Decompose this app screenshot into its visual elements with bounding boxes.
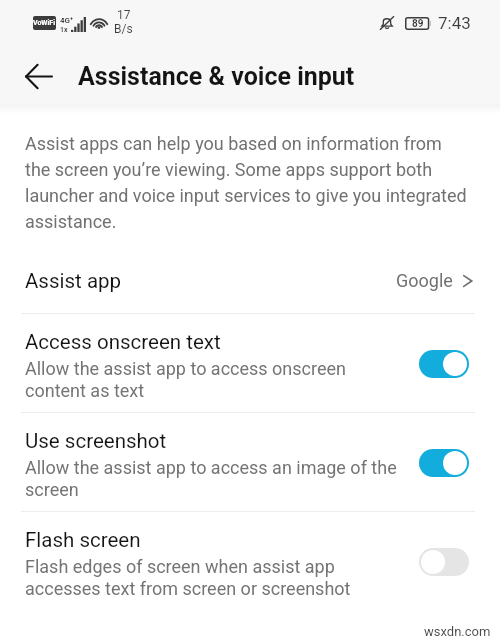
staticText: Assist apps can help you based on inform… — [25, 133, 469, 232]
button[interactable]: Access onscreen text — [0, 314, 500, 412]
staticText: B/s — [114, 22, 133, 36]
button[interactable]: Use screenshot — [0, 413, 500, 511]
staticText: Assist app — [25, 269, 122, 293]
staticText: Access onscreen text — [25, 330, 221, 354]
staticText: 89 — [412, 18, 424, 30]
button[interactable]: Back — [15, 52, 63, 100]
staticText: Use screenshot — [25, 429, 167, 453]
button[interactable]: Switch on — [419, 449, 469, 477]
staticText: 4G⁺ — [60, 16, 74, 25]
staticText: VoWiFi — [33, 19, 56, 27]
staticText: Flash screen — [25, 528, 141, 552]
button[interactable]: Flash screen — [0, 512, 500, 610]
staticText: 1x — [60, 26, 68, 34]
staticText: Flash edges of screen when assist app ac… — [25, 556, 399, 600]
staticText: 7:43 — [438, 13, 471, 33]
staticText: 17 — [117, 8, 131, 22]
staticText: wsxdn.com — [424, 624, 491, 639]
staticText: Allow the assist app to access an image … — [25, 457, 399, 501]
staticText: Google — [396, 270, 453, 291]
button[interactable]: Switch on — [419, 350, 469, 378]
button[interactable]: Switch off — [419, 548, 469, 576]
staticText: Allow the assist app to access onscreen … — [25, 358, 399, 402]
button[interactable]: Assist app — [0, 256, 500, 313]
staticText: Assistance & voice input — [78, 62, 355, 91]
